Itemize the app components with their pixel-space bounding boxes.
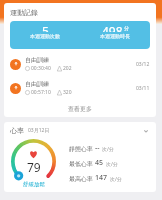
staticText: 45 [95, 158, 104, 168]
staticText: 本週運動時長 [100, 33, 130, 39]
staticText: 03/12 [136, 61, 150, 68]
staticText: 分 [124, 25, 129, 31]
staticText: 00:30:40 [31, 65, 51, 72]
staticText: 運動記錄 [10, 8, 38, 17]
staticText: 03/11 [136, 85, 150, 92]
staticText: 最高心率 [69, 175, 93, 183]
button[interactable]: 自由訓練 [4, 52, 156, 76]
other: Expand [142, 127, 150, 135]
staticText: 舒緩放鬆 [23, 181, 45, 188]
staticText: 次/分 [106, 161, 118, 168]
staticText: -- [95, 143, 100, 153]
button[interactable]: 自由訓練 [4, 76, 156, 100]
staticText: 03月12日 [28, 127, 50, 134]
staticText: 147 [95, 173, 108, 183]
staticText: 79 [27, 159, 41, 175]
staticText: 靜態心率 [69, 145, 93, 153]
staticText: 最低心率 [69, 160, 93, 168]
staticText: 00:57:10 [31, 89, 51, 96]
staticText: 320 [63, 89, 72, 96]
staticText: 心率 [10, 126, 24, 135]
button[interactable]: 查看更多 [4, 100, 156, 117]
staticText: 次/分 [102, 146, 114, 153]
staticText: 498 [102, 23, 123, 32]
staticText: 次/分 [110, 176, 122, 183]
staticText: 自由訓練 [25, 56, 49, 64]
staticText: 5 [42, 23, 49, 32]
staticText: 自由訓練 [25, 80, 49, 88]
staticText: 本週運動次數 [30, 33, 60, 39]
button[interactable]: 心率 [4, 122, 156, 135]
staticText: 查看更多 [68, 105, 92, 113]
staticText: 202 [63, 65, 72, 72]
